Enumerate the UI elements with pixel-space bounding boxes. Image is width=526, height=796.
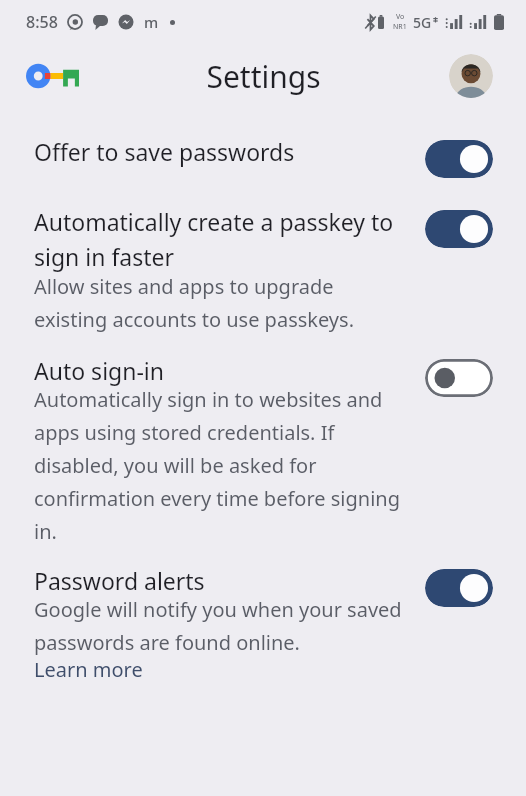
staticText: Google will notify you when your saved p…	[34, 596, 409, 656]
button[interactable]: Automatically create a passkey to sign i…	[0, 204, 526, 335]
button[interactable]: Automatically create a passkey to sign i…	[425, 210, 493, 248]
staticText: m	[144, 12, 159, 32]
button[interactable]: Learn more	[34, 656, 143, 683]
button[interactable]: Google Password Manager	[22, 56, 82, 96]
staticText: Vo	[396, 12, 405, 22]
staticText: Learn more	[34, 656, 143, 683]
button[interactable]: Offer to save passwords on	[425, 140, 493, 178]
staticText: Allow sites and apps to upgrade existing…	[34, 273, 409, 333]
staticText: 5G	[413, 13, 432, 32]
button[interactable]: Auto sign-in	[0, 353, 526, 547]
staticText: Settings	[206, 56, 321, 97]
staticText: Auto sign-in	[34, 355, 164, 386]
staticText: NR1	[393, 22, 407, 32]
button[interactable]: Account	[449, 54, 493, 98]
button[interactable]: Auto sign-in off	[425, 359, 493, 397]
staticText: Offer to save passwords	[34, 136, 295, 167]
staticText: 8:58	[26, 11, 58, 33]
staticText: Password alerts	[34, 565, 205, 596]
staticText: Automatically sign in to websites and ap…	[34, 386, 409, 545]
button[interactable]: Password alerts	[0, 563, 526, 685]
button[interactable]: Password alerts on	[425, 569, 493, 607]
staticText: Automatically create a passkey to sign i…	[34, 206, 409, 273]
button[interactable]: Offer to save passwords	[0, 134, 526, 180]
